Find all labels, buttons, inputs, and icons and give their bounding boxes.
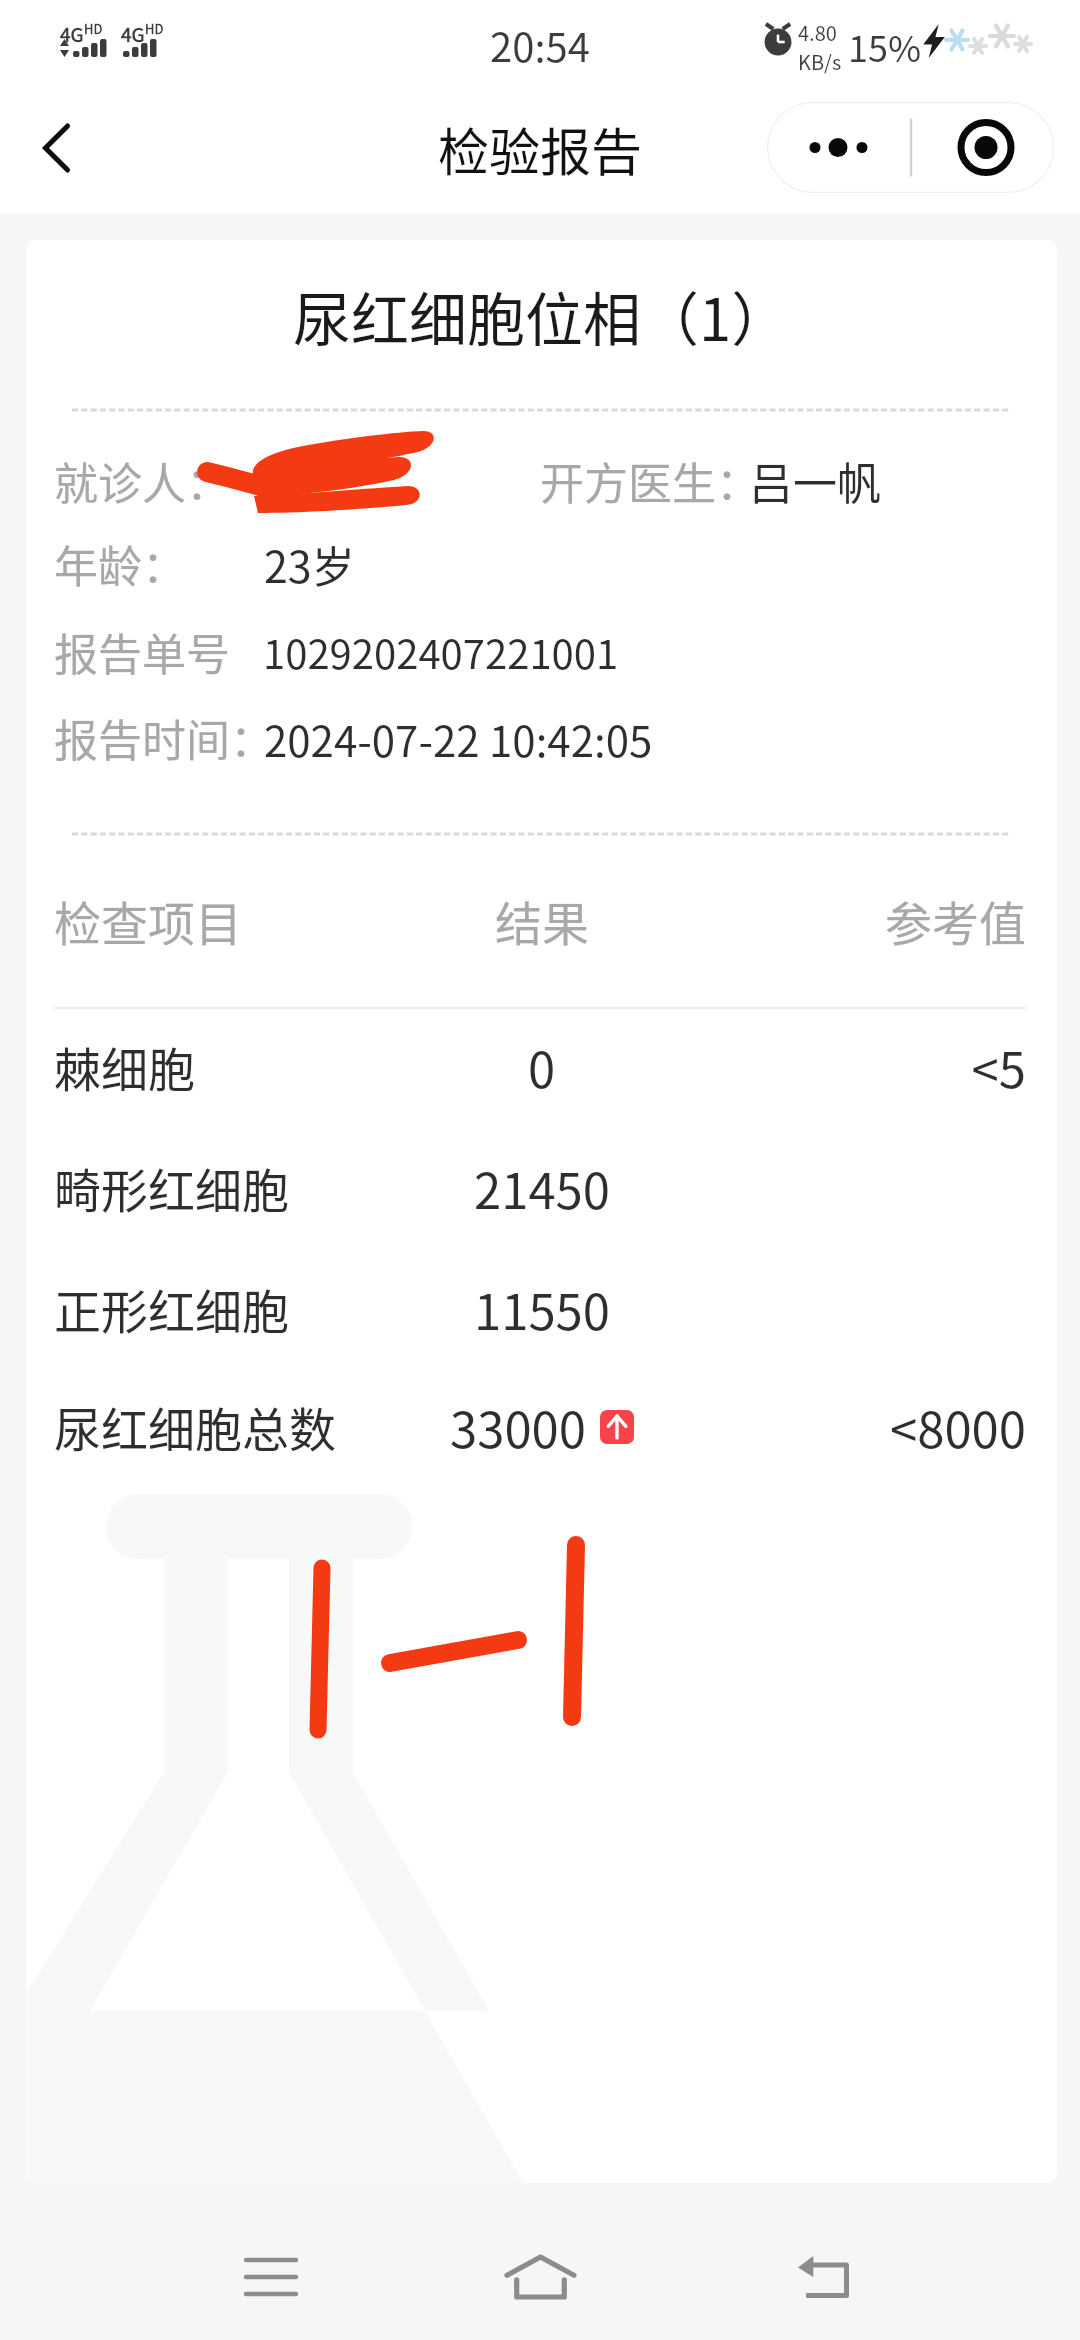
staticText: 结果 bbox=[495, 886, 589, 954]
staticText: 20:54 bbox=[490, 16, 590, 74]
staticText: 尿红细胞总数 bbox=[54, 1392, 336, 1460]
staticText: 畸形红细胞 bbox=[54, 1153, 289, 1221]
staticText: 0 bbox=[528, 1031, 556, 1102]
staticText: 年龄： bbox=[54, 532, 186, 596]
staticText: 检验报告 bbox=[438, 112, 643, 186]
staticText: 4G bbox=[121, 20, 145, 48]
staticText: HD bbox=[145, 19, 164, 38]
button[interactable]: Back bbox=[743, 2197, 903, 2340]
staticText: <8000 bbox=[890, 1391, 1026, 1462]
staticText: 开方医生： bbox=[540, 449, 760, 513]
staticText: 21450 bbox=[474, 1152, 610, 1223]
button[interactable]: Recent apps bbox=[191, 2197, 351, 2340]
staticText: 参考值 bbox=[885, 886, 1026, 954]
staticText: 4G bbox=[60, 20, 84, 48]
button[interactable]: Back bbox=[9, 100, 105, 196]
staticText: 尿红细胞位相（1） bbox=[293, 274, 790, 358]
staticText: 报告时间： bbox=[54, 706, 274, 770]
staticText: KB/s bbox=[798, 47, 842, 76]
staticText: <5 bbox=[971, 1031, 1026, 1102]
staticText: 吕一帆 bbox=[749, 449, 881, 513]
staticText: 棘细胞 bbox=[54, 1032, 195, 1100]
staticText: 23岁 bbox=[264, 533, 355, 595]
staticText: 就诊人： bbox=[54, 449, 230, 513]
staticText: 11550 bbox=[474, 1273, 610, 1344]
staticText: 4.80 bbox=[798, 18, 837, 47]
staticText: 检查项目 bbox=[54, 886, 242, 954]
button[interactable]: More options bbox=[767, 102, 1054, 193]
staticText: 正形红细胞 bbox=[54, 1274, 289, 1342]
staticText: 15% bbox=[848, 20, 922, 72]
button[interactable]: Home bbox=[460, 2197, 620, 2340]
staticText: 1029202407221001 bbox=[263, 623, 619, 681]
staticText: 报告单号 bbox=[54, 620, 230, 684]
staticText: HD bbox=[84, 19, 103, 38]
staticText: 33000 bbox=[450, 1391, 586, 1462]
staticText: 2024-07-22 10:42:05 bbox=[264, 708, 653, 769]
